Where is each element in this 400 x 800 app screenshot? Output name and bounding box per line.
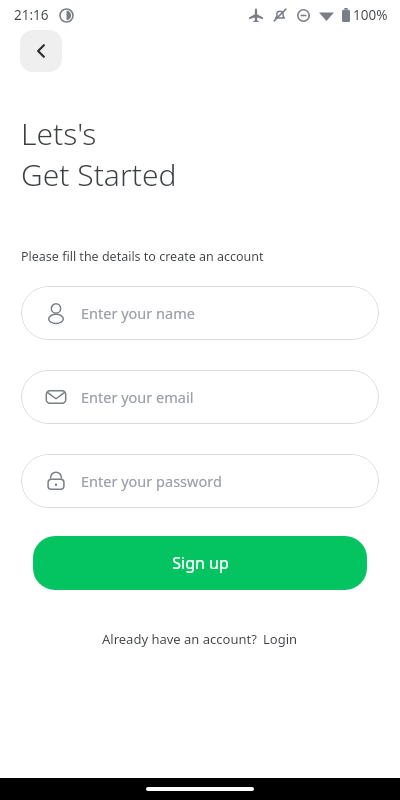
staticText: Get Started	[21, 154, 177, 195]
staticText: 21:16	[14, 6, 49, 24]
button[interactable]: Back	[20, 30, 62, 72]
staticText: Please fill the details to create an acc…	[21, 248, 264, 265]
staticText: Enter your name	[81, 303, 195, 323]
button[interactable]: Enter your password	[21, 454, 379, 508]
button[interactable]: Enter your name	[21, 286, 379, 340]
staticText: Enter your password	[81, 471, 222, 491]
staticText: Already have an account?	[102, 630, 257, 648]
button[interactable]: Enter your email	[21, 370, 379, 424]
button[interactable]: Sign up	[33, 536, 367, 590]
staticText: 100%	[353, 6, 388, 24]
button[interactable]: Login	[263, 630, 298, 648]
staticText: Sign up	[172, 552, 229, 574]
staticText: Enter your email	[81, 387, 194, 407]
staticText: Lets's	[21, 113, 97, 154]
